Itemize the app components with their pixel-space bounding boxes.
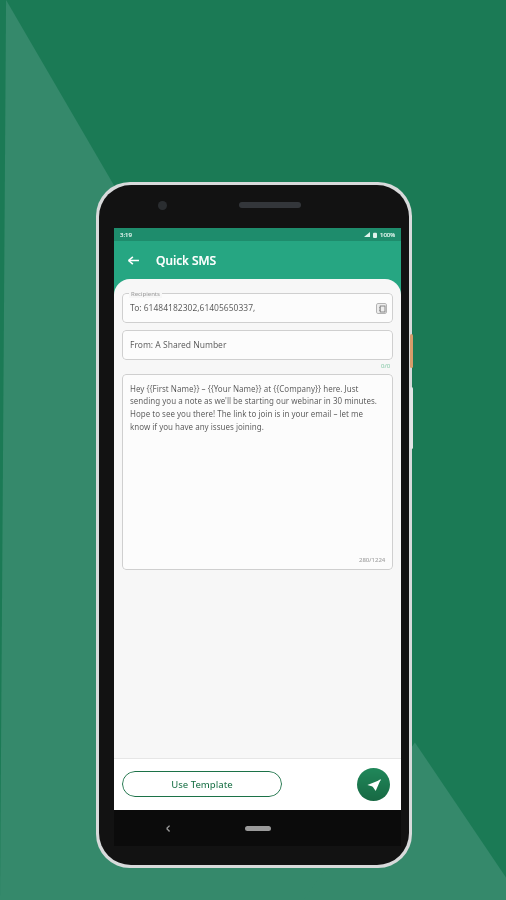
staticText: From: A Shared Number (130, 339, 227, 351)
button[interactable]: Hey {{First Name}} – {{Your Name}} at {{… (122, 374, 393, 570)
staticText: 280/1224 (359, 556, 386, 564)
button[interactable]: Use Template (122, 771, 282, 797)
staticText: 100% (380, 231, 396, 239)
staticText: Use Template (171, 778, 233, 791)
button[interactable]: To: 61484182302,61405650337, (122, 293, 393, 323)
button[interactable]: Send (357, 768, 390, 801)
button[interactable]: From: A Shared Number (122, 330, 393, 360)
button[interactable]: Pick contacts (376, 303, 387, 314)
staticText: Hey {{First Name}} – {{Your Name}} at {{… (130, 383, 385, 433)
button[interactable]: Back (120, 247, 146, 273)
staticText: 0/0 (381, 362, 391, 370)
staticText: Recipients (131, 290, 160, 298)
staticText: Quick SMS (156, 252, 217, 268)
staticText: To: 61484182302,61405650337, (130, 302, 256, 314)
staticText: 3:19 (120, 231, 132, 239)
